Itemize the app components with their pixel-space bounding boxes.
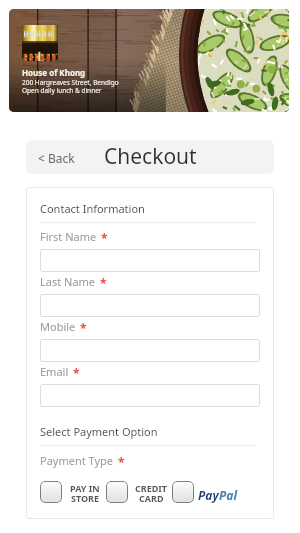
button[interactable]: Text field — [40, 339, 260, 362]
staticText: House of Khong — [22, 67, 86, 78]
staticText: First Name — [40, 229, 97, 244]
staticText: Email — [40, 364, 69, 379]
button[interactable]: Text field — [40, 384, 260, 407]
staticText: Contact Information — [40, 201, 145, 216]
staticText: PAY IN — [70, 482, 100, 494]
button[interactable]: PayPal — [172, 481, 194, 503]
button[interactable]: Text field — [40, 249, 260, 272]
staticText: * — [73, 365, 80, 380]
staticText: 200 Hargreaves Street, Bendigo — [22, 78, 119, 87]
staticText: CARD — [139, 492, 164, 504]
staticText: < Back — [38, 150, 75, 166]
staticText: Payment Type — [40, 453, 114, 468]
staticText: Select Payment Option — [40, 424, 158, 439]
staticText: * — [101, 230, 108, 245]
staticText: Pal — [219, 487, 238, 503]
staticText: Checkout — [104, 142, 197, 171]
staticText: * — [100, 275, 107, 290]
staticText: Open daily lunch & dinner — [22, 86, 102, 95]
staticText: * — [80, 320, 87, 335]
button[interactable]: Text field — [40, 294, 260, 317]
button[interactable]: < Back — [32, 145, 81, 169]
staticText: STORE — [71, 492, 100, 504]
staticText: Mobile — [40, 319, 76, 334]
staticText: Last Name — [40, 274, 96, 289]
staticText: * — [118, 454, 125, 469]
staticText: CREDIT — [135, 482, 168, 494]
staticText: Pay — [198, 487, 219, 503]
button[interactable]: Credit card — [106, 481, 128, 503]
button[interactable]: Pay in store — [40, 481, 62, 503]
